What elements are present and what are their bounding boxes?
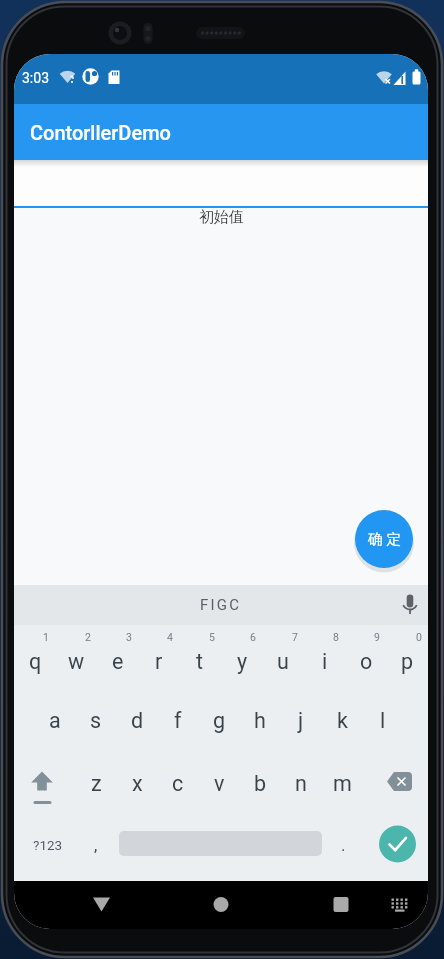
button[interactable]: . bbox=[325, 829, 361, 861]
staticText: h bbox=[254, 708, 266, 733]
staticText: l bbox=[380, 708, 386, 733]
button[interactable] bbox=[379, 826, 417, 864]
button[interactable]: i bbox=[307, 645, 343, 677]
staticText: ?123 bbox=[33, 837, 63, 853]
staticText: 8 bbox=[333, 631, 339, 643]
staticText: f bbox=[174, 708, 182, 733]
button[interactable]: a bbox=[37, 704, 73, 736]
staticText: o bbox=[360, 649, 373, 674]
staticText: y bbox=[237, 649, 248, 674]
button[interactable]: 7 bbox=[288, 630, 302, 644]
staticText: t bbox=[196, 649, 204, 674]
staticText: a bbox=[49, 708, 61, 733]
button[interactable] bbox=[87, 890, 117, 920]
button[interactable]: 4 bbox=[163, 630, 177, 644]
staticText: d bbox=[131, 708, 144, 733]
staticText: c bbox=[172, 771, 184, 796]
button[interactable]: FIGC bbox=[200, 596, 242, 614]
button[interactable]: d bbox=[119, 704, 155, 736]
staticText: x bbox=[132, 771, 143, 796]
button[interactable]: c bbox=[160, 767, 196, 799]
staticText: j bbox=[298, 708, 304, 733]
staticText: . bbox=[341, 835, 346, 855]
staticText: m bbox=[333, 771, 352, 796]
staticText: 确定 bbox=[366, 530, 403, 548]
staticText: u bbox=[277, 649, 289, 674]
staticText: 0 bbox=[416, 631, 422, 643]
button[interactable]: t bbox=[182, 645, 218, 677]
button[interactable]: k bbox=[324, 704, 360, 736]
staticText: v bbox=[214, 771, 225, 796]
button[interactable]: ?123 bbox=[22, 829, 74, 861]
staticText: k bbox=[337, 708, 348, 733]
button[interactable]: e bbox=[100, 645, 136, 677]
button[interactable] bbox=[382, 757, 428, 803]
staticText: 6 bbox=[250, 631, 256, 643]
staticText: b bbox=[254, 771, 267, 796]
button[interactable]: v bbox=[201, 767, 237, 799]
button[interactable]: 1 bbox=[39, 630, 53, 644]
button[interactable]: 3 bbox=[122, 630, 136, 644]
button[interactable] bbox=[389, 890, 415, 916]
button[interactable]: b bbox=[242, 767, 278, 799]
staticText: n bbox=[295, 771, 307, 796]
button[interactable]: f bbox=[160, 704, 196, 736]
button[interactable]: u bbox=[265, 645, 301, 677]
staticText: g bbox=[213, 708, 226, 733]
button[interactable]: y bbox=[224, 645, 260, 677]
button[interactable]: 5 bbox=[205, 630, 219, 644]
staticText: i bbox=[322, 649, 328, 674]
staticText: s bbox=[90, 708, 102, 733]
button[interactable]: , bbox=[78, 829, 114, 861]
staticText: z bbox=[91, 771, 102, 796]
button[interactable]: ContorllerDemo bbox=[30, 121, 171, 144]
button[interactable]: 8 bbox=[329, 630, 343, 644]
button[interactable] bbox=[326, 890, 356, 920]
staticText: , bbox=[94, 835, 98, 855]
staticText: w bbox=[68, 649, 85, 674]
button[interactable]: o bbox=[348, 645, 384, 677]
button[interactable] bbox=[206, 890, 236, 920]
button[interactable]: l bbox=[365, 704, 401, 736]
button[interactable]: r bbox=[141, 645, 177, 677]
button[interactable]: q bbox=[17, 645, 53, 677]
staticText: 5 bbox=[209, 631, 215, 643]
button[interactable]: 0 bbox=[412, 630, 426, 644]
button[interactable]: m bbox=[324, 767, 360, 799]
button[interactable]: 9 bbox=[370, 630, 384, 644]
button[interactable]: z bbox=[78, 767, 114, 799]
button[interactable]: j bbox=[283, 704, 319, 736]
staticText: 初始值 bbox=[199, 208, 244, 227]
staticText: ContorllerDemo bbox=[30, 121, 171, 144]
staticText: 7 bbox=[292, 631, 298, 643]
staticText: 9 bbox=[374, 631, 380, 643]
button[interactable]: n bbox=[283, 767, 319, 799]
button[interactable]: 2 bbox=[81, 630, 95, 644]
staticText: 4 bbox=[167, 631, 173, 643]
staticText: q bbox=[29, 649, 42, 674]
staticText: e bbox=[112, 649, 124, 674]
button[interactable]: g bbox=[201, 704, 237, 736]
staticText: p bbox=[401, 649, 414, 674]
staticText: 2 bbox=[85, 631, 91, 643]
button[interactable] bbox=[14, 160, 428, 206]
staticText: 1 bbox=[43, 631, 49, 643]
button[interactable] bbox=[28, 757, 70, 799]
button[interactable]: p bbox=[389, 645, 425, 677]
button[interactable]: 6 bbox=[246, 630, 260, 644]
button[interactable]: s bbox=[78, 704, 114, 736]
button[interactable]: h bbox=[242, 704, 278, 736]
button[interactable]: 确定 bbox=[355, 510, 413, 568]
staticText: 3 bbox=[126, 631, 132, 643]
button[interactable]: x bbox=[119, 767, 155, 799]
staticText: FIGC bbox=[200, 596, 242, 614]
button[interactable]: w bbox=[58, 645, 94, 677]
staticText: r bbox=[155, 649, 163, 674]
staticText: 3:03 bbox=[22, 70, 49, 86]
